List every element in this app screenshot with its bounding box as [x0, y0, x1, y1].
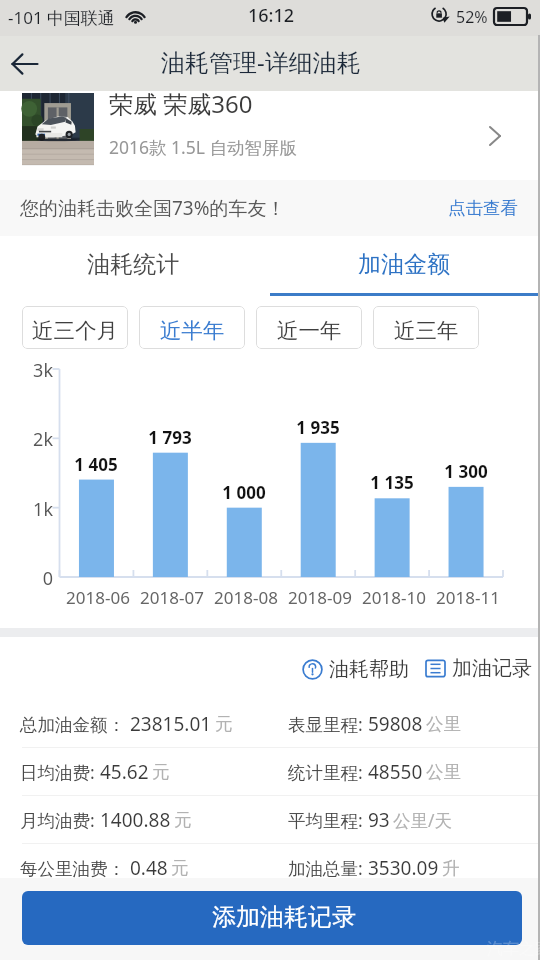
staticText: 油耗统计	[87, 250, 179, 279]
staticText: 1 935	[278, 416, 358, 439]
staticText: 点击查看	[448, 197, 518, 219]
staticText: 1400.88	[100, 807, 171, 833]
staticText: 汽车之家	[487, 939, 540, 959]
staticText: 每公里油费：	[20, 856, 130, 880]
staticText: 93	[368, 807, 390, 833]
staticText: 荣威 荣威360	[109, 87, 253, 120]
staticText: 近三年	[394, 317, 459, 344]
button[interactable]: 近三年	[373, 306, 479, 349]
button[interactable]: 油耗帮助	[302, 657, 409, 682]
staticText: 52%	[456, 6, 488, 28]
staticText: 48550	[368, 759, 423, 785]
staticText: 2018-08	[201, 586, 291, 609]
staticText: 1 300	[426, 460, 506, 483]
staticText: 2018-06	[53, 586, 143, 609]
staticText: 公里	[426, 761, 461, 783]
staticText: 总加油金额：	[20, 712, 130, 736]
staticText: 油耗管理-详细油耗	[161, 45, 361, 78]
staticText: 统计里程:	[288, 760, 368, 784]
button[interactable]: 近三个月	[22, 306, 128, 349]
staticText: 近半年	[160, 317, 225, 344]
staticText: 3k	[0, 358, 53, 383]
staticText: 升	[442, 857, 460, 879]
button[interactable]: 加油记录	[425, 656, 532, 681]
staticText: 2k	[0, 427, 53, 452]
staticText: 23815.01	[130, 711, 212, 737]
staticText: 16:12	[248, 3, 295, 28]
staticText: 2018-07	[127, 586, 217, 609]
staticText: 油耗帮助	[329, 657, 409, 682]
staticText: 加油记录	[452, 656, 532, 681]
staticText: 元	[152, 761, 170, 783]
staticText: 0.48	[130, 855, 168, 881]
staticText: 1 793	[130, 426, 210, 449]
staticText: 1 135	[352, 471, 432, 494]
staticText: 近三个月	[32, 317, 118, 344]
button[interactable]: Back	[0, 39, 50, 89]
staticText: 1 405	[56, 453, 136, 476]
staticText: 0	[0, 566, 53, 591]
staticText: -101 中国联通	[8, 6, 116, 29]
button[interactable]: 近半年	[139, 306, 245, 349]
staticText: 2018-11	[423, 586, 513, 609]
button[interactable]: 荣威 荣威360	[0, 91, 540, 180]
button[interactable]: 加油金额	[270, 236, 540, 296]
staticText: 2018-10	[349, 586, 439, 609]
staticText: 加油金额	[358, 250, 450, 279]
staticText: 1 000	[204, 481, 284, 504]
staticText: 平均里程:	[288, 808, 368, 832]
button[interactable]: 您的油耗击败全国73%的车友！	[0, 180, 540, 236]
button[interactable]: 添加油耗记录	[22, 891, 522, 945]
staticText: 1k	[0, 497, 53, 522]
staticText: 公里	[426, 713, 461, 735]
staticText: 公里/天	[393, 808, 453, 832]
button[interactable]: 油耗统计	[0, 236, 270, 296]
staticText: 元	[174, 809, 192, 831]
staticText: 日均油费:	[20, 760, 100, 784]
staticText: 3530.09	[368, 855, 439, 881]
staticText: 59808	[368, 711, 423, 737]
staticText: 月均油费:	[20, 808, 100, 832]
staticText: 您的油耗击败全国73%的车友！	[20, 195, 286, 221]
staticText: 添加油耗记录	[212, 902, 356, 932]
staticText: 表显里程:	[288, 712, 368, 736]
staticText: 45.62	[100, 759, 149, 785]
staticText: 2016款 1.5L 自动智屏版	[109, 135, 298, 159]
staticText: 2018-09	[275, 586, 365, 609]
button[interactable]: 近一年	[256, 306, 362, 349]
staticText: 元	[171, 857, 189, 879]
staticText: 加油总量:	[288, 856, 368, 880]
staticText: 元	[215, 713, 233, 735]
staticText: 近一年	[277, 317, 342, 344]
